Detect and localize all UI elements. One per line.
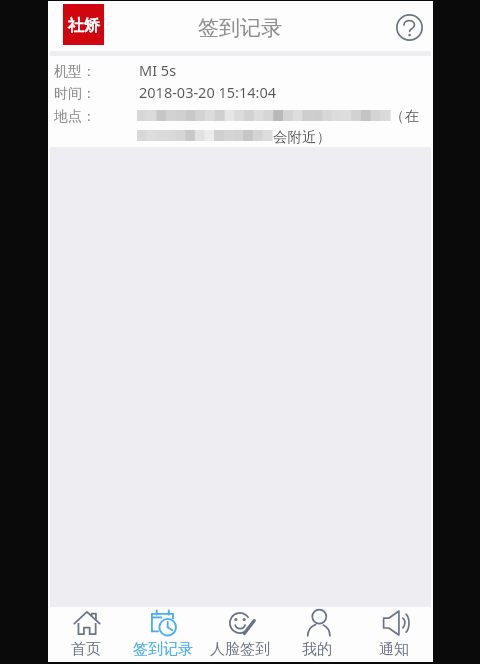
staticText: 首页 [71, 640, 101, 659]
button[interactable]: 社矫 [63, 4, 104, 45]
staticText: 机型： [54, 63, 96, 81]
staticText: 时间： [54, 85, 96, 103]
button[interactable]: 首页 [48, 607, 124, 659]
staticText: 通知 [379, 640, 409, 659]
staticText: 签到记录 [133, 640, 193, 659]
staticText: 2018-03-20 15:14:04 [139, 82, 276, 102]
staticText: （在 [390, 107, 419, 125]
button[interactable]: 人脸签到 [201, 607, 278, 659]
staticText: 签到记录 [198, 15, 282, 41]
staticText: 我的 [302, 640, 332, 659]
button[interactable]: 签到记录 [124, 607, 201, 659]
staticText: 会附近） [273, 128, 331, 146]
staticText: 地点： [54, 108, 96, 126]
button[interactable]: 通知 [355, 607, 432, 659]
button[interactable]: Help [391, 9, 427, 45]
staticText: 人脸签到 [210, 640, 270, 659]
button[interactable]: 我的 [278, 607, 355, 659]
staticText: MI 5s [139, 60, 177, 80]
staticText: 社矫 [68, 16, 100, 36]
